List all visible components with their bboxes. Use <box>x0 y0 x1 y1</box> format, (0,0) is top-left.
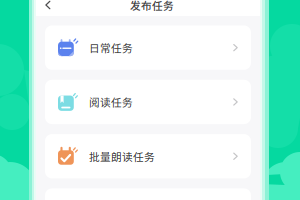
staticText: 日常任务 <box>89 40 133 55</box>
staticText: 阅读任务 <box>89 94 133 110</box>
button[interactable]: Back <box>36 0 62 11</box>
button[interactable]: 阅读任务 <box>45 80 251 124</box>
staticText: 批量朗读任务 <box>89 148 155 164</box>
button[interactable]: 批量朗读任务 <box>45 134 251 178</box>
button[interactable]: 日常任务 <box>45 25 251 70</box>
staticText: 发布任务 <box>130 0 174 13</box>
